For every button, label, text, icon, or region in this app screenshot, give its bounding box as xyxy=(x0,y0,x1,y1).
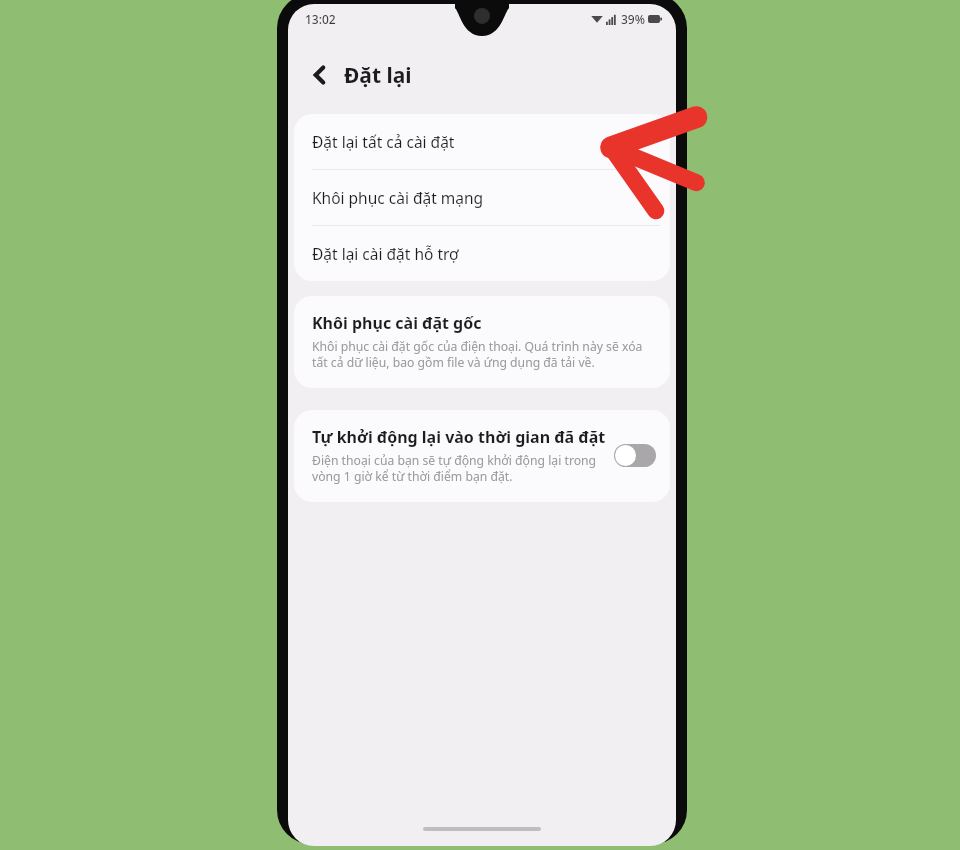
staticText: Khôi phục cài đặt gốc xyxy=(312,312,482,334)
button[interactable]: Tự khởi động lại vào thời gian đã đặt xyxy=(294,410,670,502)
button[interactable]: Khôi phục cài đặt mạng xyxy=(294,170,670,225)
staticText: 39% xyxy=(621,11,645,27)
staticText: Điện thoại của bạn sẽ tự động khởi động … xyxy=(312,452,606,484)
staticText: 13:02 xyxy=(305,11,336,27)
button[interactable]: Đặt lại tất cả cài đặt xyxy=(294,114,670,169)
staticText: Đặt lại tất cả cài đặt xyxy=(312,131,455,152)
staticText: Khôi phục cài đặt mạng xyxy=(312,187,484,208)
staticText: Đặt lại cài đặt hỗ trợ xyxy=(312,243,459,264)
staticText: Khôi phục cài đặt gốc của điện thoại. Qu… xyxy=(312,338,652,370)
staticText: Đặt lại xyxy=(344,61,412,90)
button[interactable]: Khôi phục cài đặt gốc xyxy=(294,296,670,388)
button[interactable]: Back xyxy=(302,57,338,93)
staticText: Tự khởi động lại vào thời gian đã đặt xyxy=(312,426,606,448)
button[interactable]: Auto restart toggle xyxy=(614,444,656,467)
button[interactable]: Đặt lại cài đặt hỗ trợ xyxy=(294,226,670,281)
